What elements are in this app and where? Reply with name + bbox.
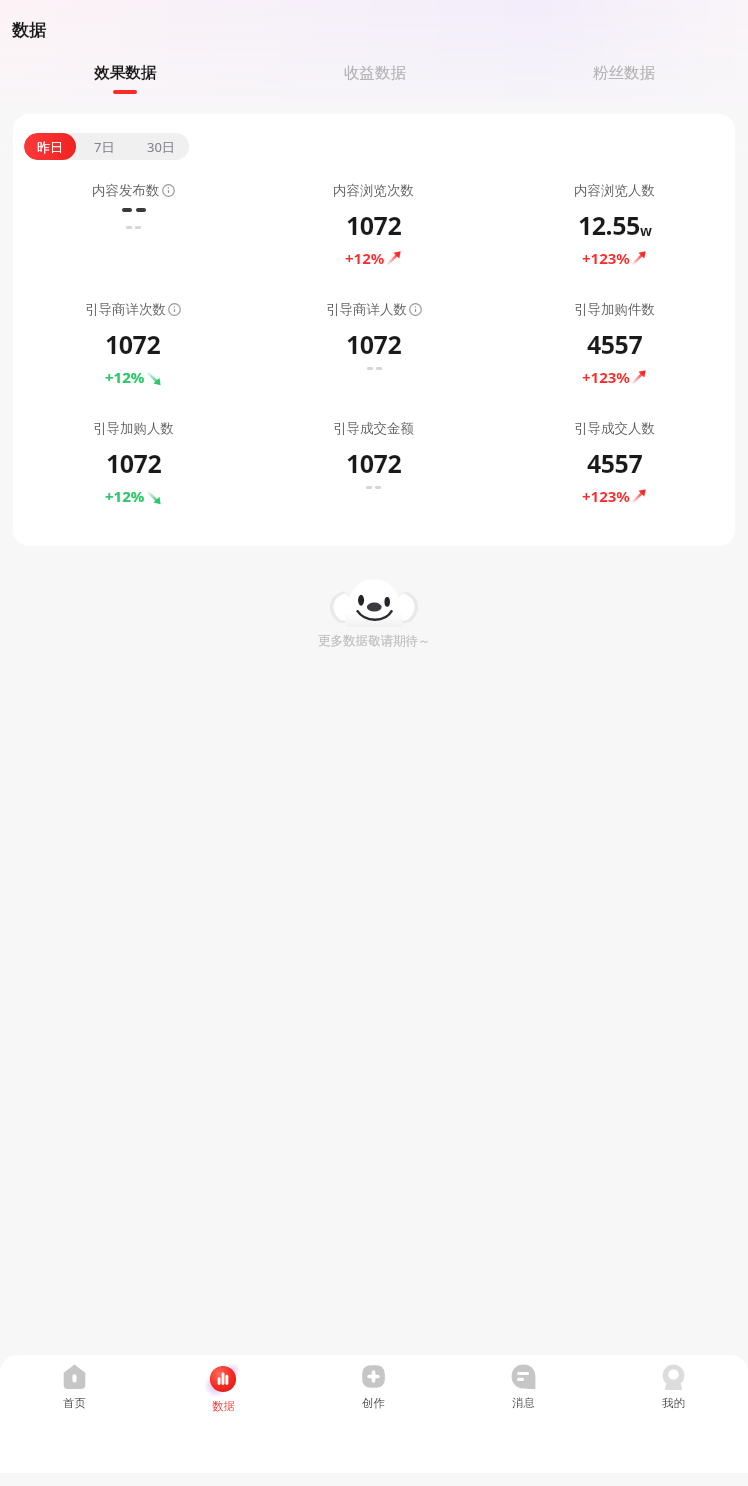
- staticText: 我的: [662, 1396, 685, 1410]
- staticText: 粉丝数据: [593, 63, 655, 83]
- staticText: 7日: [94, 138, 115, 156]
- staticText: 1072: [346, 327, 402, 361]
- staticText: 12.55: [578, 208, 640, 242]
- staticText: 更多数据敬请期待～: [318, 633, 431, 649]
- button[interactable]: 引导商详次数: [13, 301, 253, 387]
- staticText: 1072: [105, 327, 161, 361]
- staticText: 引导加购件数: [574, 301, 655, 318]
- button[interactable]: 引导成交人数: [494, 420, 735, 506]
- staticText: +123%: [582, 486, 630, 506]
- staticText: 内容浏览次数: [333, 182, 414, 199]
- staticText: +123%: [582, 367, 630, 387]
- button[interactable]: 内容浏览次数: [253, 182, 494, 268]
- button[interactable]: 30日: [132, 133, 189, 160]
- staticText: 4557: [587, 327, 643, 361]
- staticText: 昨日: [37, 139, 63, 155]
- button[interactable]: 引导加购人数: [13, 420, 253, 506]
- button[interactable]: 引导加购件数: [494, 301, 735, 387]
- button[interactable]: 引导成交金额: [253, 420, 494, 489]
- staticText: w: [640, 221, 652, 240]
- staticText: +123%: [582, 248, 630, 268]
- button[interactable]: 内容发布数: [13, 182, 253, 229]
- staticText: 消息: [512, 1396, 535, 1410]
- staticText: 4557: [587, 446, 643, 480]
- button[interactable]: 内容浏览人数: [494, 182, 735, 268]
- staticText: 1072: [106, 446, 162, 480]
- staticText: +12%: [105, 486, 145, 506]
- staticText: 1072: [346, 208, 402, 242]
- staticText: 30日: [147, 138, 175, 156]
- staticText: 收益数据: [344, 63, 406, 83]
- button[interactable]: 粉丝数据: [499, 59, 748, 98]
- button[interactable]: 消息: [448, 1355, 598, 1410]
- button[interactable]: 效果数据: [0, 59, 250, 98]
- staticText: 引导商详次数: [85, 301, 166, 318]
- staticText: 数据: [12, 20, 46, 41]
- staticText: +12%: [345, 248, 385, 268]
- staticText: 1072: [346, 446, 402, 480]
- button[interactable]: 数据: [149, 1355, 298, 1413]
- staticText: 数据: [212, 1399, 235, 1413]
- staticText: 创作: [362, 1396, 385, 1410]
- button[interactable]: 引导商详人数: [253, 301, 494, 370]
- staticText: 引导加购人数: [93, 420, 174, 437]
- button[interactable]: 收益数据: [250, 59, 499, 98]
- staticText: 引导成交金额: [333, 420, 414, 437]
- staticText: 引导商详人数: [326, 301, 407, 318]
- button[interactable]: 创作: [298, 1355, 448, 1410]
- staticText: 内容发布数: [92, 182, 160, 199]
- staticText: 首页: [63, 1396, 86, 1410]
- button[interactable]: 我的: [598, 1355, 748, 1410]
- button[interactable]: 7日: [76, 133, 132, 160]
- staticText: +12%: [105, 367, 145, 387]
- button[interactable]: 昨日: [24, 133, 76, 160]
- staticText: 效果数据: [94, 63, 156, 83]
- staticText: 引导成交人数: [574, 420, 655, 437]
- button[interactable]: 首页: [0, 1355, 149, 1410]
- staticText: 内容浏览人数: [574, 182, 655, 199]
